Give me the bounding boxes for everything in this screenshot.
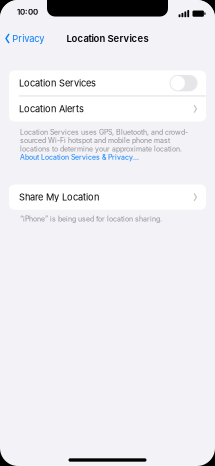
staticText: “iPhone” is being used for location shar… [20,215,162,223]
staticText: Share My Location [19,191,99,203]
button[interactable]: Location Services [9,70,206,96]
staticText: Location Services [19,77,96,89]
staticText: Privacy [12,33,44,44]
staticText: Location Services [66,33,148,44]
staticText: Location Alerts [19,103,84,114]
button[interactable]: Location Alerts [9,96,206,121]
button[interactable]: About Location Services & Privacy... [20,153,192,161]
staticText: Location Services uses GPS, Bluetooth, a… [20,128,188,153]
button[interactable]: Share My Location [9,184,206,210]
button[interactable]: Privacy [0,29,48,48]
staticText: 10:00 [17,7,38,17]
staticText: About Location Services & Privacy... [20,153,139,161]
